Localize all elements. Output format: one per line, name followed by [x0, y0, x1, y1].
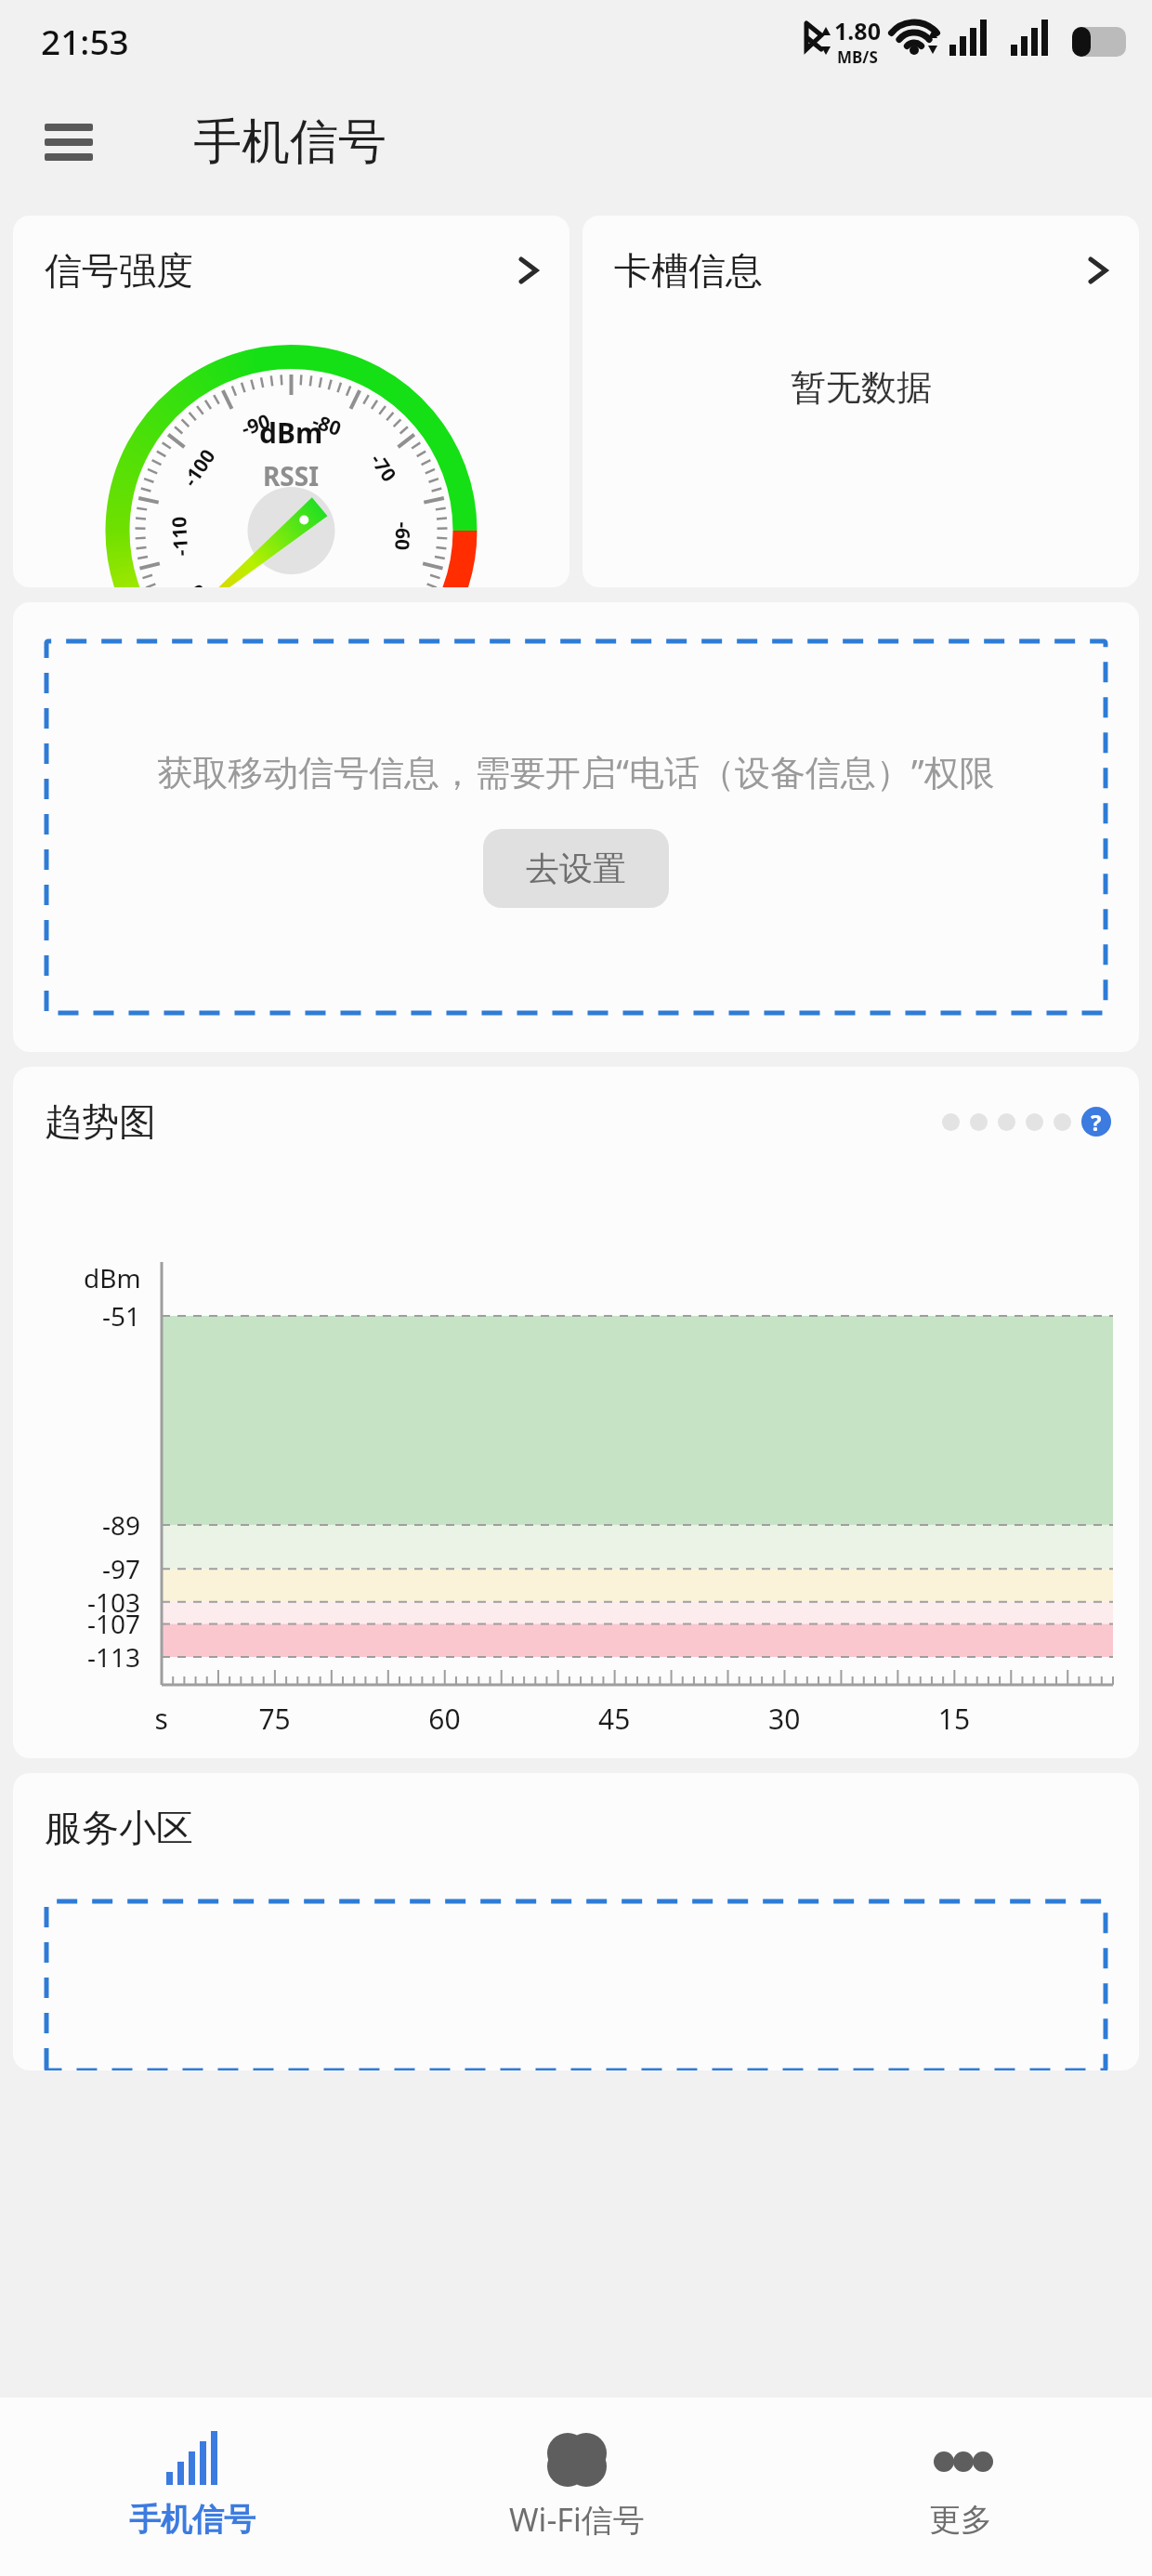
staticText: 获取移动信号信息，需要开启“电话（设备信息）”权限: [157, 747, 995, 795]
staticText: 暂无数据: [791, 365, 932, 410]
button[interactable]: 卡槽信息: [583, 216, 1139, 587]
staticText: 去设置: [526, 848, 626, 889]
button[interactable]: Wi-Fi信号: [385, 2398, 768, 2576]
button[interactable]: Help: [1081, 1107, 1111, 1137]
staticText: 手机信号: [129, 2500, 255, 2540]
staticText: 趋势图: [45, 1098, 156, 1145]
staticText: 卡槽信息: [614, 247, 763, 294]
button[interactable]: 信号强度: [13, 216, 569, 587]
staticText: 21:53: [41, 18, 129, 64]
staticText: MB/S: [837, 46, 878, 68]
staticText: 手机信号: [193, 112, 386, 173]
staticText: Wi-Fi信号: [509, 2498, 645, 2541]
button[interactable]: 更多: [768, 2398, 1152, 2576]
button[interactable]: 手机信号: [0, 2398, 385, 2576]
staticText: 服务小区: [45, 1805, 193, 1851]
button[interactable]: 去设置: [483, 829, 669, 908]
staticText: 1.80: [834, 15, 881, 46]
staticText: 更多: [929, 2500, 992, 2540]
staticText: 信号强度: [45, 247, 193, 294]
staticText: ?: [1091, 1107, 1102, 1137]
button[interactable]: Menu: [35, 109, 102, 176]
